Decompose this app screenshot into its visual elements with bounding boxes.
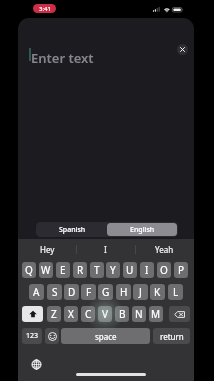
staticText: C [85,307,92,321]
staticText: J [139,285,142,299]
staticText: R [77,263,84,277]
staticText: F [86,285,92,299]
button[interactable]: Z [47,306,61,322]
button[interactable]: H [116,284,131,300]
button[interactable]: I [76,239,135,259]
button[interactable]: Q [22,262,36,278]
button[interactable]: Y [106,262,120,278]
button[interactable]: N [132,306,146,322]
button[interactable]: E [56,262,70,278]
staticText: D [68,285,76,299]
button[interactable]: A [29,284,44,300]
staticText: A [33,285,40,299]
staticText: H [120,285,128,299]
button[interactable]: O [157,262,171,278]
button[interactable]: G [98,284,113,300]
button[interactable]: Yeah [135,239,194,259]
staticText: S [52,285,58,299]
staticText: U [126,263,134,277]
staticText: I [104,244,107,255]
button[interactable]: U [123,262,137,278]
staticText: T [94,263,100,277]
staticText: 123 [26,331,39,341]
staticText: W [41,263,51,277]
staticText: Spanish [59,225,86,235]
staticText: N [135,307,143,321]
button[interactable]: J [133,284,148,300]
staticText: 3:41 [39,5,51,13]
button[interactable]: C [81,306,95,322]
staticText: Hey [40,244,55,255]
staticText: Q [25,263,33,277]
button[interactable]: V [98,306,112,322]
staticText: Enter text [31,49,94,67]
staticText: O [160,263,168,277]
button[interactable]: Hey [18,239,76,259]
button[interactable]: Clear text [177,44,188,55]
button[interactable]: Change keyboard language [30,358,42,370]
button[interactable]: T [90,262,104,278]
staticText: P [178,263,185,277]
button[interactable]: Shift [22,306,43,322]
button[interactable]: P [174,262,188,278]
staticText: Y [110,263,116,277]
button[interactable]: F [81,284,96,300]
button[interactable]: I [140,262,154,278]
staticText: return [160,331,184,342]
button[interactable]: W [39,262,53,278]
staticText: Z [51,307,57,321]
staticText: English [130,225,155,235]
staticText: L [173,285,179,299]
button[interactable]: X [64,306,78,322]
staticText: I [145,263,149,277]
staticText: X [68,307,74,321]
staticText: G [102,285,110,299]
staticText: B [119,307,126,321]
button[interactable]: M [149,306,163,322]
button[interactable]: return [153,328,190,344]
staticText: Yeah [155,244,174,255]
button[interactable]: space [61,328,150,344]
button[interactable]: K [150,284,165,300]
button[interactable]: D [64,284,79,300]
button[interactable]: R [73,262,87,278]
button[interactable]: English [107,223,177,236]
staticText: M [151,307,161,321]
staticText: E [60,263,66,277]
button[interactable]: Spanish [37,223,107,236]
button[interactable]: 123 [22,328,42,344]
button[interactable]: L [168,284,183,300]
staticText: space [95,331,117,342]
button[interactable]: Emoji [45,328,59,344]
button[interactable]: S [47,284,62,300]
staticText: K [154,285,161,299]
button[interactable]: Backspace [169,306,190,322]
button[interactable]: B [115,306,129,322]
staticText: V [102,307,108,321]
